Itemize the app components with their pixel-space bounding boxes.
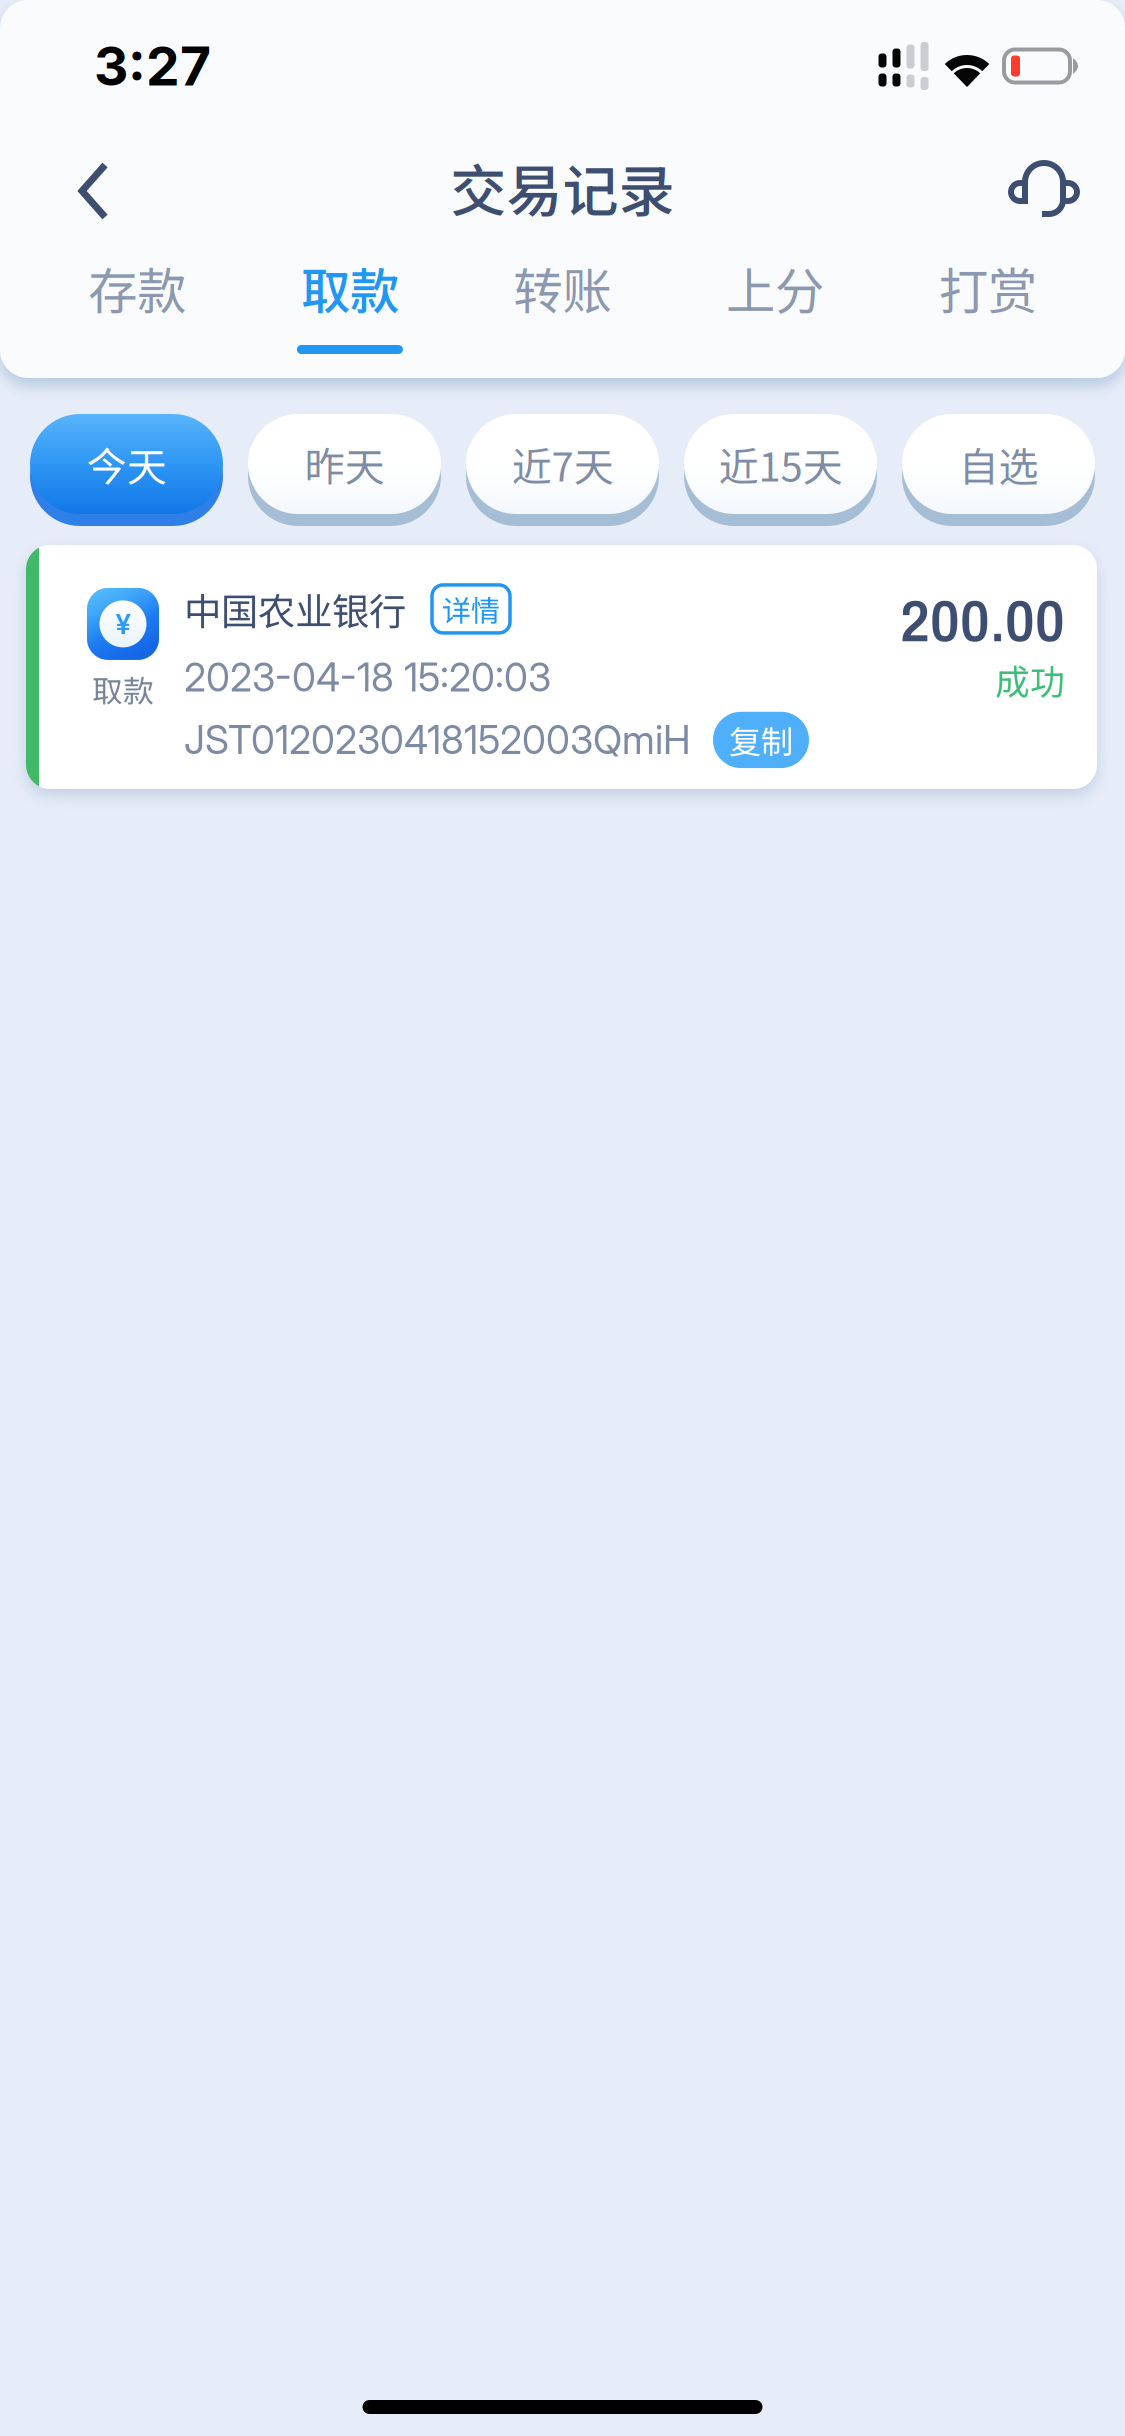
staticText: 取款 — [301, 252, 399, 323]
staticText: 200.00 — [900, 591, 1065, 653]
staticText: 交易记录 — [450, 146, 674, 228]
staticText: 复制 — [729, 717, 793, 763]
staticText: 上分 — [726, 252, 824, 323]
button[interactable]: 取款 — [244, 242, 456, 378]
staticText: ¥ — [115, 607, 130, 641]
staticText: 取款 — [92, 667, 154, 711]
staticText: 成功 — [995, 654, 1065, 704]
staticText: 2023-04-18 15:20:03 — [184, 654, 551, 701]
button[interactable]: 自选 — [902, 414, 1095, 526]
staticText: 打赏 — [939, 252, 1037, 323]
staticText: 转账 — [513, 252, 611, 323]
button[interactable]: 近15天 — [684, 414, 877, 526]
button[interactable]: Back — [0, 132, 146, 242]
staticText: 中国农业银行 — [184, 582, 406, 636]
staticText: 今天 — [86, 435, 166, 493]
button[interactable]: 近7天 — [466, 414, 659, 526]
button[interactable]: 详情 — [432, 585, 510, 633]
button[interactable]: 转账 — [456, 242, 669, 378]
staticText: 近15天 — [718, 435, 842, 493]
staticText: 自选 — [958, 435, 1038, 493]
button[interactable]: 昨天 — [248, 414, 441, 526]
button[interactable]: 打赏 — [881, 242, 1094, 378]
staticText: 3:27 — [94, 34, 211, 98]
button[interactable]: 复制 — [713, 712, 809, 768]
button[interactable]: Customer service — [975, 133, 1125, 241]
staticText: 昨天 — [304, 435, 384, 493]
button[interactable]: 上分 — [669, 242, 881, 378]
staticText: 存款 — [88, 252, 186, 323]
staticText: 近7天 — [511, 435, 613, 493]
button[interactable]: 今天 — [30, 414, 223, 526]
staticText: JST0120230418152003QmiH — [184, 716, 691, 763]
staticText: 详情 — [442, 588, 500, 630]
button[interactable]: 存款 — [31, 242, 244, 378]
